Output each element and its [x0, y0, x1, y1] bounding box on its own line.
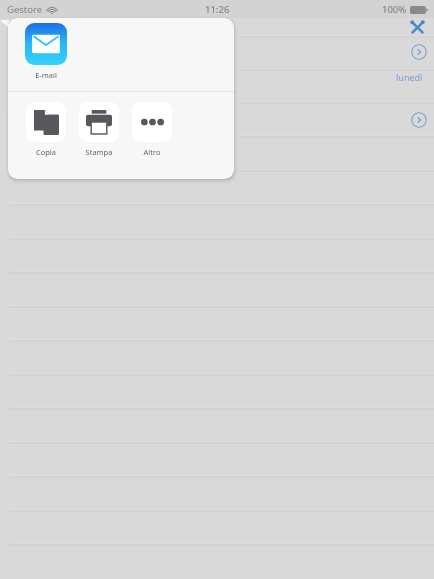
button[interactable]: Copia: [20, 102, 72, 157]
staticText: 11:26: [205, 3, 230, 16]
staticText: Gestore: [7, 3, 43, 16]
button[interactable]: Altro: [126, 102, 178, 157]
staticText: Stampa: [73, 147, 125, 157]
button[interactable]: Modifica: [404, 14, 430, 40]
staticText: 100%: [382, 3, 407, 16]
button[interactable]: E-mail: [19, 23, 73, 80]
staticText: E-mail: [19, 70, 73, 80]
staticText: Altro: [126, 147, 178, 157]
staticText: lunedì: [396, 71, 423, 83]
button[interactable]: Stampa: [73, 102, 125, 157]
button[interactable]: lunedì: [396, 71, 423, 83]
staticText: Copia: [20, 147, 72, 157]
button[interactable]: Dettagli: [409, 110, 429, 130]
button[interactable]: Dettagli: [409, 42, 429, 62]
